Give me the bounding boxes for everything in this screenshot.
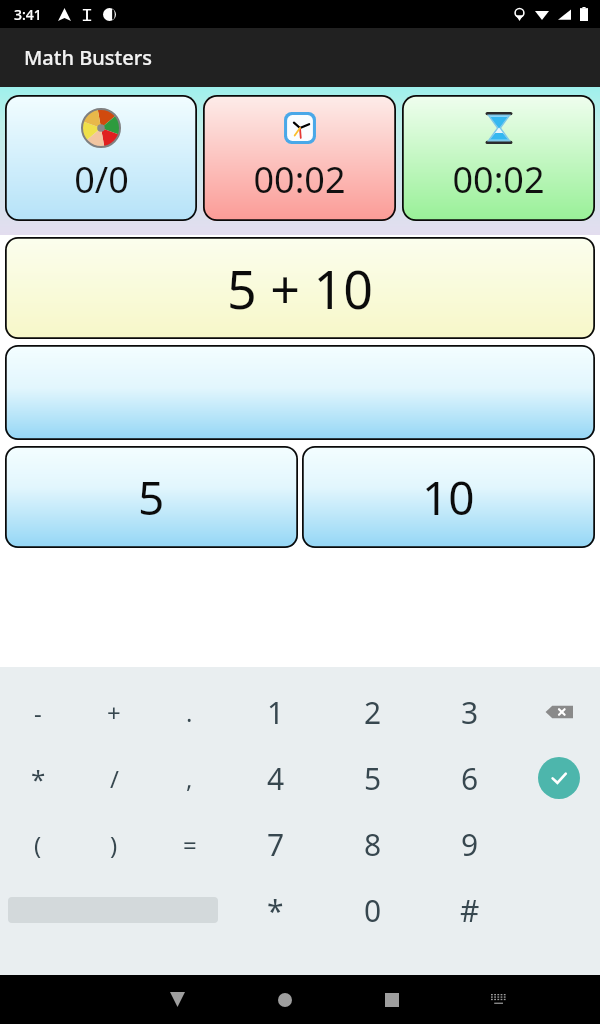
staticText: 10 — [422, 466, 475, 529]
button[interactable]: . — [152, 679, 227, 745]
button[interactable]: - — [0, 679, 76, 745]
button[interactable]: * — [226, 877, 324, 943]
button[interactable]: 1 — [227, 679, 324, 745]
staticText: # — [460, 890, 480, 931]
staticText: 1 — [267, 692, 285, 733]
staticText: 6 — [461, 758, 479, 799]
staticText: ) — [110, 828, 118, 861]
button[interactable]: 3 — [421, 679, 518, 745]
staticText: 7 — [267, 824, 285, 865]
staticText: * — [31, 761, 46, 796]
button[interactable]: 00:02 — [203, 95, 396, 221]
staticText: = — [183, 828, 197, 861]
button[interactable]: Keyboard — [445, 975, 552, 1024]
staticText: * — [267, 890, 284, 931]
button[interactable]: / — [76, 745, 152, 811]
staticText: Math Busters — [24, 44, 152, 71]
button[interactable]: 5 — [5, 446, 298, 548]
button[interactable]: Backspace — [540, 693, 578, 731]
button[interactable]: 5 — [324, 745, 421, 811]
button[interactable]: , — [152, 745, 227, 811]
staticText: 8 — [364, 824, 382, 865]
button[interactable]: 6 — [421, 745, 518, 811]
staticText: . — [186, 696, 193, 729]
staticText: 2 — [364, 692, 382, 733]
button[interactable]: Enter — [538, 757, 580, 799]
button[interactable]: + — [76, 679, 152, 745]
button[interactable]: * — [0, 745, 76, 811]
staticText: - — [34, 696, 42, 729]
staticText: 3 — [461, 692, 479, 733]
button[interactable]: ( — [0, 811, 76, 877]
staticText: + — [107, 696, 121, 729]
staticText: 5 — [364, 758, 382, 799]
staticText: 0/0 — [74, 155, 129, 204]
button[interactable]: 0 — [324, 877, 421, 943]
button[interactable]: 10 — [302, 446, 595, 548]
staticText: / — [110, 762, 119, 795]
staticText: 9 — [461, 824, 479, 865]
staticText: 4 — [267, 758, 285, 799]
button[interactable]: = — [152, 811, 227, 877]
button[interactable]: Home — [231, 975, 338, 1024]
staticText: , — [186, 762, 193, 795]
button[interactable]: # — [421, 877, 518, 943]
button[interactable]: 7 — [227, 811, 324, 877]
button[interactable]: 5 + 10 — [5, 237, 595, 339]
button[interactable]: ) — [76, 811, 152, 877]
button[interactable]: 8 — [324, 811, 421, 877]
button[interactable]: 9 — [421, 811, 518, 877]
staticText: 00:02 — [253, 155, 346, 204]
button[interactable] — [5, 345, 595, 440]
staticText: 5 + 10 — [227, 253, 374, 324]
staticText: 5 — [138, 466, 165, 529]
button[interactable]: Back — [124, 975, 231, 1024]
button[interactable]: Recents — [338, 975, 445, 1024]
button[interactable]: 0/0 — [5, 95, 197, 221]
button[interactable]: 2 — [324, 679, 421, 745]
staticText: ( — [34, 828, 42, 861]
staticText: 0 — [364, 890, 382, 931]
button[interactable]: 4 — [227, 745, 324, 811]
button[interactable]: 00:02 — [402, 95, 595, 221]
staticText: 3:41 — [14, 5, 42, 24]
staticText: 00:02 — [452, 155, 545, 204]
